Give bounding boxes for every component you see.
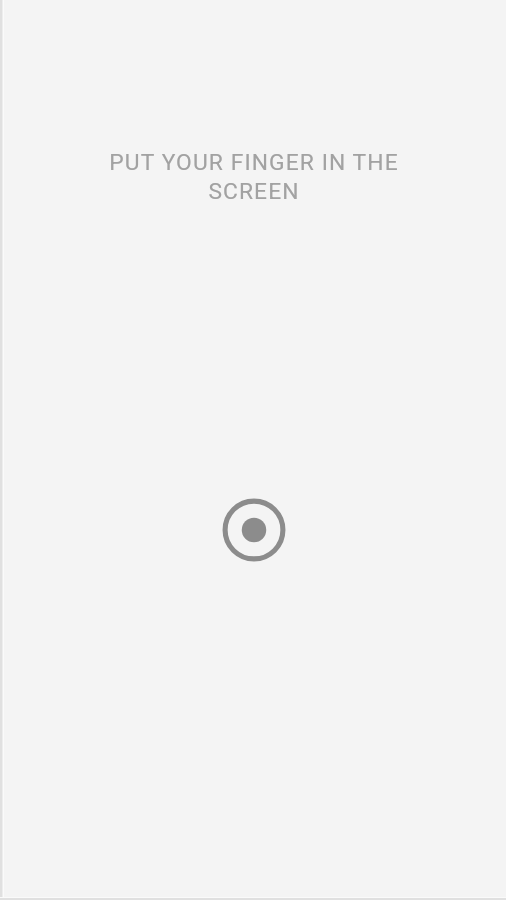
button[interactable]: Start fingerprint scan <box>218 494 290 566</box>
staticText: PUT YOUR FINGER IN THE SCREEN <box>99 149 409 205</box>
